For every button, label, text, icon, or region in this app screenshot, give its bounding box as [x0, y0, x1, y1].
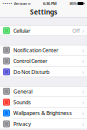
staticText: Notification Center — [13, 47, 58, 54]
staticText: Control Center — [13, 57, 47, 65]
button[interactable]: Privacy — [0, 119, 87, 129]
button[interactable]: Sounds — [0, 97, 87, 108]
staticText: › — [82, 119, 84, 128]
staticText: 86% — [69, 1, 76, 6]
staticText: › — [82, 109, 84, 117]
button[interactable]: Do Not Disturb — [0, 67, 87, 77]
staticText: Do Not Disturb — [13, 68, 49, 75]
staticText: › — [82, 67, 84, 76]
button[interactable]: Wallpapers & Brightness — [0, 108, 87, 119]
staticText: 6:36 PM — [43, 1, 57, 6]
button[interactable]: General — [0, 86, 87, 97]
staticText: › — [82, 26, 84, 35]
staticText: Sounds — [13, 99, 31, 106]
staticText: › — [82, 57, 84, 65]
staticText: Cellular — [13, 27, 30, 34]
staticText: ••••• — [2, 1, 12, 6]
staticText: › — [82, 46, 84, 55]
staticText: Off — [72, 27, 80, 34]
staticText: Privacy — [13, 120, 31, 127]
staticText: ≈ — [27, 1, 30, 6]
staticText: › — [82, 87, 84, 96]
button[interactable]: Cellular — [0, 25, 87, 36]
staticText: Settings — [30, 8, 57, 16]
button[interactable]: Notification Center — [0, 45, 87, 56]
staticText: Verizon — [13, 1, 26, 6]
staticText: General — [13, 88, 32, 95]
button[interactable]: Control Center — [0, 56, 87, 67]
staticText: Wallpapers & Brightness — [13, 109, 72, 117]
staticText: › — [82, 98, 84, 107]
